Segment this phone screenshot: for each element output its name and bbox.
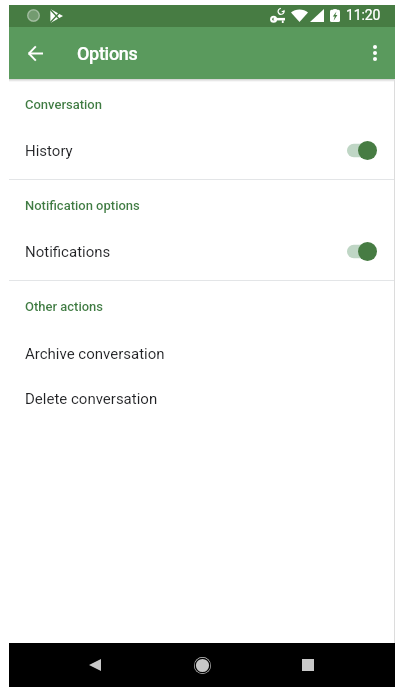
staticText: Conversation: [25, 97, 102, 112]
staticText: Options: [77, 43, 138, 64]
staticText: Archive conversation: [25, 345, 165, 363]
button[interactable]: Back: [67, 643, 123, 687]
staticText: Notification options: [25, 198, 140, 213]
button[interactable]: Notifications: [9, 228, 395, 274]
staticText: 11:20: [346, 7, 381, 23]
staticText: History: [25, 142, 347, 160]
button[interactable]: History: [9, 127, 395, 173]
button[interactable]: Delete conversation: [9, 374, 395, 419]
button[interactable]: Recent apps: [280, 643, 336, 687]
staticText: Delete conversation: [25, 390, 158, 408]
button[interactable]: Navigate up: [15, 33, 55, 73]
button[interactable]: More options: [355, 33, 395, 73]
staticText: Other actions: [25, 299, 104, 314]
button[interactable]: Home: [174, 643, 230, 687]
staticText: Notifications: [25, 243, 347, 261]
button[interactable]: Archive conversation: [9, 329, 395, 374]
